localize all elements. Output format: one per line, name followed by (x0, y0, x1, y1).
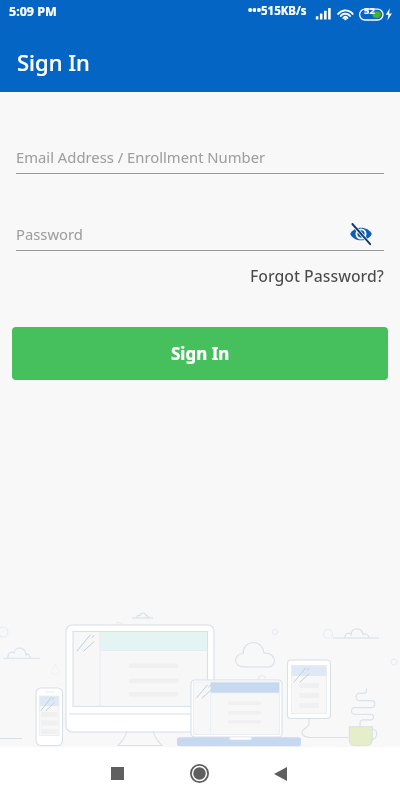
staticText: Sign In (17, 47, 90, 77)
staticText: Password (16, 224, 348, 244)
staticText: 52 (364, 4, 375, 17)
staticText: •••515KB/s (248, 3, 307, 19)
button[interactable]: Back (241, 747, 321, 800)
button[interactable]: Recent apps (77, 747, 157, 800)
button[interactable]: Toggle password visibility (348, 220, 374, 248)
staticText: Sign In (171, 342, 230, 365)
button[interactable]: Sign In (12, 327, 388, 380)
staticText: Email Address / Enrollment Number (16, 147, 384, 167)
button[interactable]: Forgot Password? (246, 261, 388, 291)
staticText: 5:09 PM (9, 3, 57, 20)
staticText: Forgot Password? (250, 265, 384, 287)
button[interactable]: Home (159, 747, 239, 800)
